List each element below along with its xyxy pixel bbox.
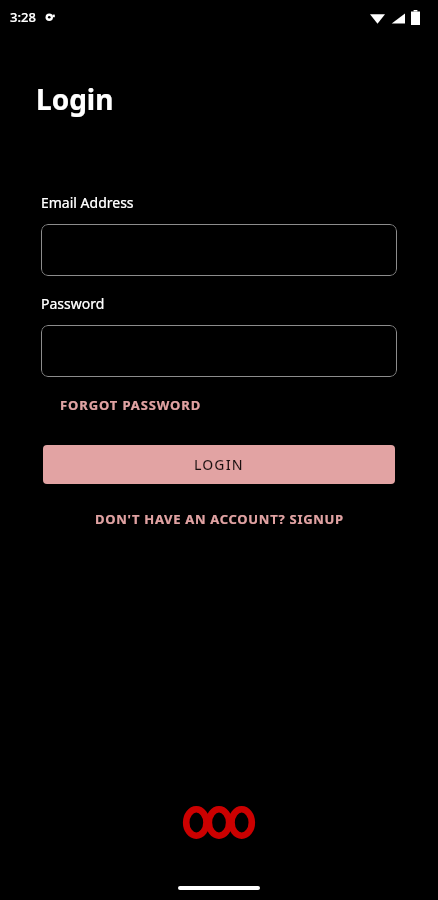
staticText: Password: [41, 294, 105, 313]
other: App logo: [185, 806, 253, 839]
button[interactable]: FORGOT PASSWORD: [52, 389, 210, 421]
button[interactable]: [41, 325, 397, 377]
button[interactable]: DON'T HAVE AN ACCOUNT? SIGNUP: [85, 504, 354, 534]
staticText: DON'T HAVE AN ACCOUNT? SIGNUP: [95, 510, 344, 528]
staticText: Email Address: [41, 193, 134, 212]
staticText: 3:28: [10, 8, 36, 26]
staticText: Login: [36, 80, 114, 118]
button[interactable]: [41, 224, 397, 276]
staticText: FORGOT PASSWORD: [60, 396, 202, 414]
staticText: LOGIN: [194, 455, 244, 474]
button[interactable]: LOGIN: [43, 445, 395, 484]
